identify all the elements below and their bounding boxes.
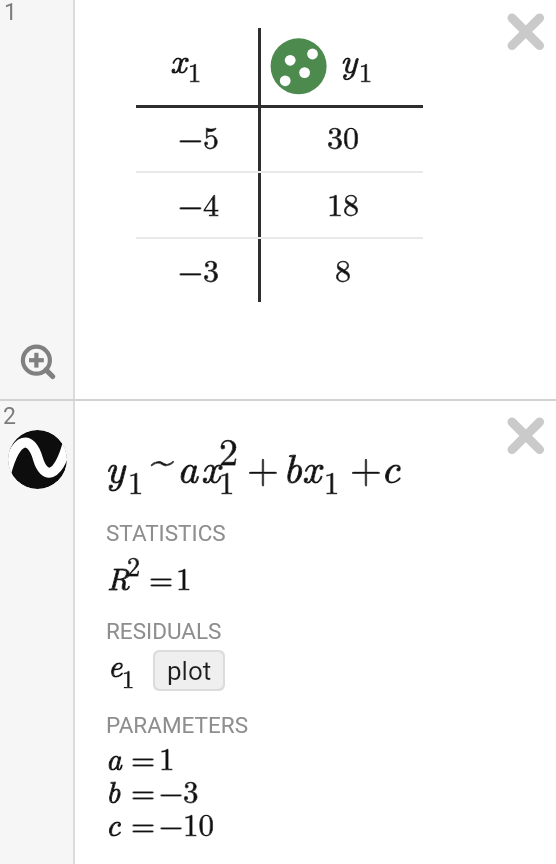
staticText: = — [131, 768, 156, 812]
staticText: ~ — [151, 428, 174, 486]
staticText: −5 — [178, 113, 219, 158]
button[interactable]: Regression — [8, 430, 67, 489]
staticText: b — [283, 437, 302, 495]
staticText: 1 — [122, 660, 135, 695]
staticText: x — [302, 437, 322, 495]
staticText: 30 — [327, 113, 360, 158]
staticText: b — [283, 437, 302, 495]
staticText: c — [106, 801, 121, 845]
staticText: 1 — [219, 460, 235, 503]
staticText: 1 — [176, 555, 192, 599]
staticText: x — [170, 33, 187, 83]
staticText: −5 — [178, 113, 219, 158]
staticText: e — [108, 642, 123, 686]
staticText: 8 — [335, 246, 352, 291]
staticText: = — [131, 801, 156, 845]
staticText: −10 — [159, 801, 215, 845]
staticText: 1 — [359, 52, 373, 89]
staticText: 1 — [188, 52, 202, 89]
staticText: ~ — [151, 428, 174, 486]
button[interactable]: Delete expression — [500, 410, 552, 462]
staticText: 1 — [128, 460, 144, 503]
staticText: plot — [167, 656, 212, 686]
staticText: x — [201, 437, 221, 495]
staticText: −3 — [159, 768, 199, 812]
staticText: 2 — [219, 422, 239, 476]
staticText: −10 — [159, 801, 215, 845]
staticText: −3 — [178, 246, 219, 291]
staticText: e — [108, 642, 123, 686]
staticText: 1 — [219, 460, 235, 503]
staticText: 2 — [219, 422, 239, 476]
staticText: R — [107, 555, 130, 599]
staticText: 1 — [4, 0, 17, 26]
button[interactable]: Zoom in — [14, 338, 59, 383]
staticText: 1 — [188, 52, 202, 89]
button[interactable]: plot — [153, 650, 225, 691]
staticText: x — [201, 437, 221, 495]
staticText: RESIDUALS — [106, 618, 222, 644]
staticText: a — [177, 437, 198, 495]
staticText: −3 — [159, 768, 199, 812]
staticText: −4 — [178, 180, 219, 225]
staticText: PARAMETERS — [106, 712, 248, 738]
staticText: 1 — [359, 52, 373, 89]
staticText: a — [177, 437, 198, 495]
staticText: c — [106, 801, 121, 845]
button[interactable]: Delete expression — [500, 6, 552, 58]
staticText: y — [340, 33, 358, 83]
staticText: b — [106, 768, 121, 812]
staticText: 2 — [127, 547, 141, 584]
staticText: 1 — [176, 555, 192, 599]
staticText: 8 — [335, 246, 352, 291]
staticText: 1 — [122, 660, 135, 695]
staticText: = — [131, 768, 156, 812]
staticText: 18 — [327, 180, 360, 225]
staticText: x — [170, 33, 187, 83]
staticText: a — [106, 735, 122, 779]
button[interactable]: Change point style — [271, 38, 328, 95]
staticText: = — [131, 735, 156, 779]
staticText: 1 — [159, 735, 175, 779]
staticText: y — [105, 437, 125, 495]
staticText: = — [131, 801, 156, 845]
staticText: x — [302, 437, 322, 495]
staticText: c — [381, 437, 400, 495]
staticText: + — [247, 437, 279, 495]
staticText: = — [149, 555, 174, 599]
staticText: 18 — [327, 180, 360, 225]
staticText: STATISTICS — [106, 520, 226, 546]
staticText: c — [381, 437, 400, 495]
staticText: 30 — [327, 113, 360, 158]
staticText: = — [131, 735, 156, 779]
staticText: a — [106, 735, 122, 779]
staticText: y — [105, 437, 125, 495]
staticText: + — [350, 437, 382, 495]
staticText: 1 — [324, 460, 340, 503]
staticText: + — [350, 437, 382, 495]
staticText: 2 — [127, 547, 141, 584]
staticText: + — [247, 437, 279, 495]
staticText: 1 — [324, 460, 340, 503]
staticText: −3 — [178, 246, 219, 291]
staticText: 1 — [128, 460, 144, 503]
staticText: y — [340, 33, 358, 83]
staticText: 2 — [3, 403, 16, 430]
staticText: b — [106, 768, 121, 812]
staticText: R — [107, 555, 130, 599]
staticText: −4 — [178, 180, 219, 225]
staticText: = — [149, 555, 174, 599]
staticText: 1 — [159, 735, 175, 779]
